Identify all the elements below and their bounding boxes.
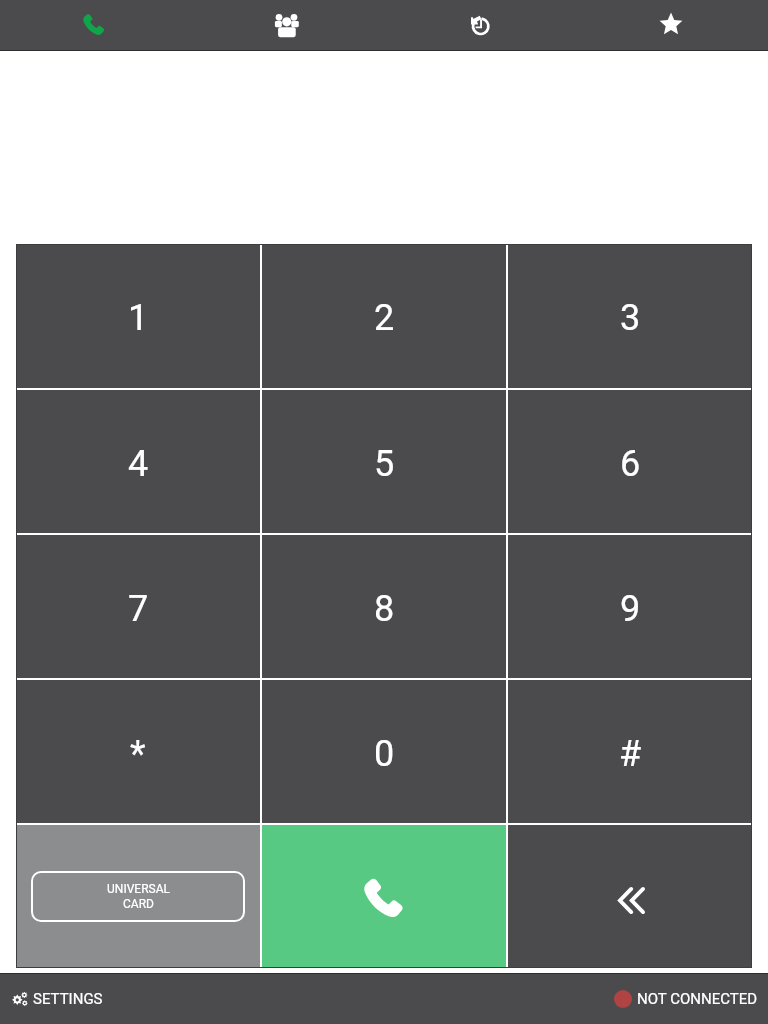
staticText: # bbox=[619, 733, 642, 775]
button[interactable]: Recent calls bbox=[384, 0, 576, 50]
button[interactable]: Contacts bbox=[192, 0, 384, 50]
button[interactable]: 0 bbox=[262, 680, 506, 823]
button[interactable]: Favorites bbox=[576, 0, 768, 50]
button[interactable]: 4 bbox=[16, 390, 260, 533]
staticText: 1 bbox=[128, 297, 149, 339]
button[interactable]: 9 bbox=[508, 535, 752, 678]
button[interactable]: UNIVERSAL CARD bbox=[16, 825, 260, 968]
staticText: 3 bbox=[620, 297, 641, 339]
staticText: * bbox=[130, 733, 146, 775]
button[interactable]: * bbox=[16, 680, 260, 823]
button[interactable]: Dial pad bbox=[0, 0, 192, 50]
staticText: 8 bbox=[374, 588, 395, 630]
staticText: 0 bbox=[374, 733, 395, 775]
button[interactable]: SETTINGS bbox=[0, 982, 113, 1016]
staticText: 5 bbox=[374, 443, 395, 485]
button[interactable]: 1 bbox=[16, 244, 260, 388]
button[interactable]: 3 bbox=[508, 244, 752, 388]
button[interactable]: Backspace bbox=[508, 825, 752, 968]
button[interactable]: 6 bbox=[508, 390, 752, 533]
button[interactable]: 5 bbox=[262, 390, 506, 533]
staticText: 2 bbox=[374, 297, 395, 339]
staticText: SETTINGS bbox=[33, 990, 103, 1008]
staticText: UNIVERSAL CARD bbox=[107, 882, 170, 911]
button[interactable]: # bbox=[508, 680, 752, 823]
button[interactable]: Call bbox=[262, 825, 506, 968]
staticText: 9 bbox=[620, 588, 641, 630]
staticText: 6 bbox=[620, 443, 641, 485]
staticText: 4 bbox=[128, 443, 149, 485]
staticText: NOT CONNECTED bbox=[637, 990, 758, 1008]
button[interactable]: 8 bbox=[262, 535, 506, 678]
button[interactable]: 7 bbox=[16, 535, 260, 678]
button[interactable]: 2 bbox=[262, 244, 506, 388]
staticText: 7 bbox=[128, 588, 149, 630]
